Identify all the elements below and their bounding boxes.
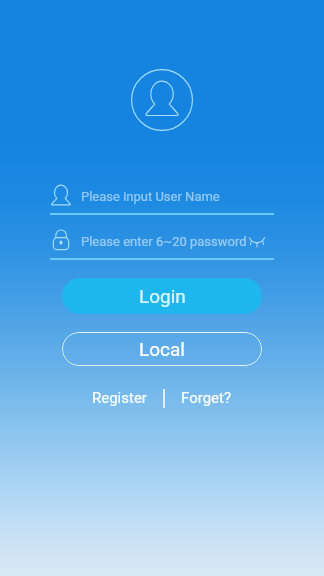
staticText: Login bbox=[139, 285, 186, 307]
button[interactable]: Register bbox=[76, 386, 163, 410]
staticText: Please enter 6~20 password bbox=[81, 234, 247, 249]
staticText: Please input User Name bbox=[81, 189, 220, 204]
button[interactable]: Login bbox=[62, 278, 262, 314]
button[interactable]: Forget? bbox=[165, 386, 248, 410]
staticText: Local bbox=[139, 338, 185, 360]
staticText: Forget? bbox=[181, 389, 232, 407]
staticText: Register bbox=[92, 389, 147, 407]
button[interactable]: Show password bbox=[244, 228, 270, 254]
button[interactable]: Local bbox=[62, 332, 262, 366]
